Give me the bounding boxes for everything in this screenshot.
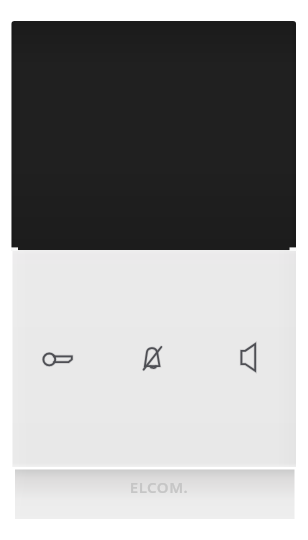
button[interactable]: Mute ringer — [141, 345, 163, 372]
staticText: ELCOM. — [19, 477, 299, 497]
button[interactable]: Door opener — [38, 348, 74, 371]
button[interactable]: Speaker volume — [240, 343, 257, 372]
